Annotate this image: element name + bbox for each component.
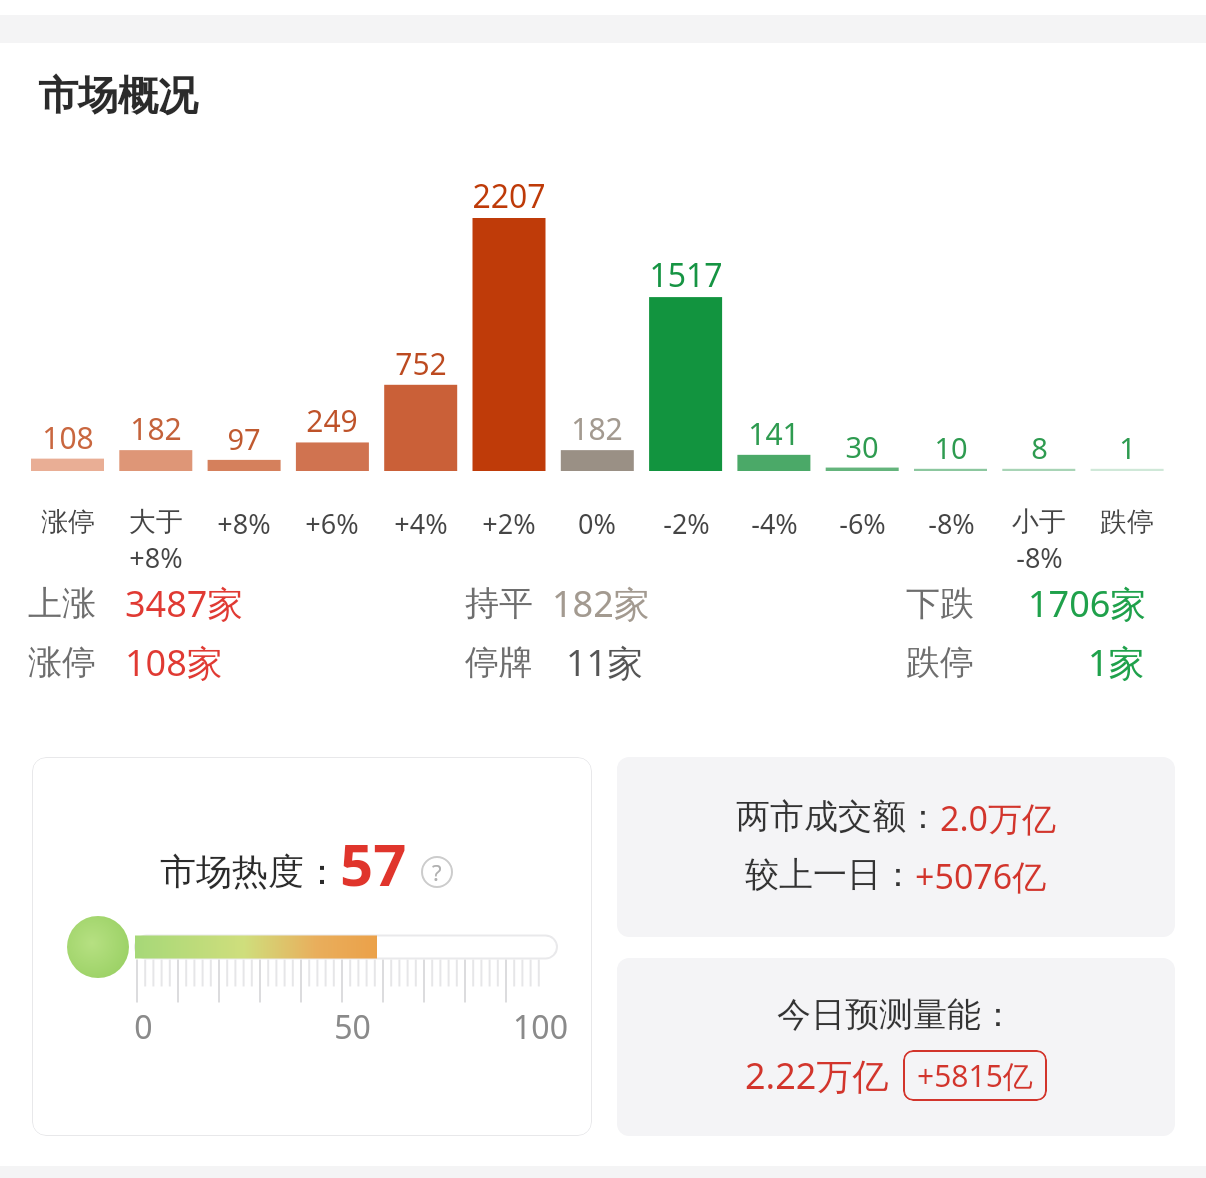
staticText: 182 <box>571 408 623 449</box>
staticText: 50 <box>334 1005 371 1049</box>
staticText: 182家 <box>552 579 650 628</box>
staticText: -2% <box>663 505 710 542</box>
button[interactable]: 今日预测量能： <box>617 958 1175 1136</box>
staticText: -8% <box>1016 539 1063 576</box>
staticText: 100 <box>513 1005 568 1049</box>
staticText: 跌停 <box>906 641 974 684</box>
staticText: 2207 <box>472 174 546 218</box>
staticText: +8% <box>129 539 183 576</box>
staticText: +5076亿 <box>915 853 1047 899</box>
staticText: 141 <box>748 413 800 454</box>
staticText: 跌停 <box>1100 505 1154 539</box>
staticText: 108家 <box>125 638 223 687</box>
staticText: 3487家 <box>125 579 244 628</box>
staticText: 下跌 <box>906 582 974 625</box>
staticText: +6% <box>305 505 359 542</box>
staticText: ? <box>432 857 442 887</box>
staticText: 97 <box>227 419 261 458</box>
button[interactable]: 帮助 <box>421 856 453 888</box>
staticText: 8 <box>1031 428 1048 467</box>
staticText: -4% <box>751 505 798 542</box>
staticText: 249 <box>306 400 358 441</box>
staticText: 两市成交额： <box>736 795 940 838</box>
staticText: 涨停 <box>41 505 95 539</box>
staticText: 30 <box>845 427 879 466</box>
staticText: 持平 <box>465 582 533 625</box>
staticText: 11家 <box>566 638 644 687</box>
staticText: 2.0万亿 <box>940 795 1057 841</box>
staticText: 1706家 <box>1028 579 1147 628</box>
staticText: 0% <box>578 505 616 542</box>
staticText: +2% <box>482 505 536 542</box>
staticText: 108 <box>42 417 94 458</box>
staticText: -6% <box>839 505 886 542</box>
staticText: 2.22万亿 <box>745 1051 889 1100</box>
staticText: 市场热度： <box>160 849 340 894</box>
staticText: -8% <box>928 505 975 542</box>
staticText: 较上一日： <box>745 853 915 896</box>
staticText: 10 <box>934 428 968 467</box>
button[interactable]: 两市成交额： <box>617 757 1175 937</box>
staticText: +4% <box>394 505 448 542</box>
button[interactable] <box>32 757 592 1136</box>
staticText: 上涨 <box>28 582 96 625</box>
staticText: 市场概况 <box>38 70 198 120</box>
staticText: 1517 <box>649 253 723 297</box>
staticText: 1家 <box>1088 638 1145 687</box>
staticText: 停牌 <box>465 641 533 684</box>
staticText: 752 <box>395 343 447 384</box>
staticText: +8% <box>217 505 271 542</box>
staticText: 1 <box>1119 428 1136 467</box>
staticText: +5815亿 <box>917 1055 1033 1096</box>
staticText: 0 <box>134 1005 153 1049</box>
staticText: 涨停 <box>28 641 96 684</box>
staticText: 今日预测量能： <box>777 993 1015 1036</box>
staticText: 57 <box>340 824 407 903</box>
staticText: 大于 <box>129 505 183 539</box>
staticText: 小于 <box>1012 505 1066 539</box>
staticText: 182 <box>130 408 182 449</box>
